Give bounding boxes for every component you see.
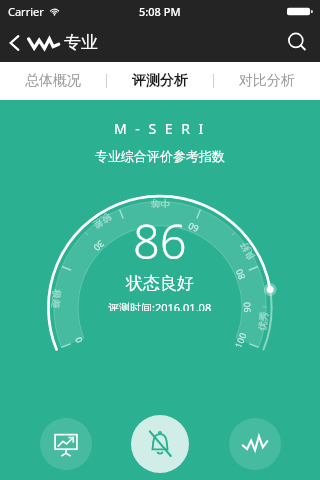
staticText: 5:08 PM bbox=[139, 4, 181, 19]
button[interactable]: Mute notifications bbox=[131, 415, 189, 473]
staticText: 专业 bbox=[64, 32, 98, 53]
staticText: 86 bbox=[133, 209, 187, 273]
button[interactable]: Back bbox=[0, 26, 108, 59]
staticText: 评测时间:2016.01.08 bbox=[108, 300, 212, 311]
staticText: 专业综合评价参考指数 bbox=[95, 148, 225, 164]
button[interactable]: 对比分析 bbox=[214, 62, 320, 100]
staticText: 对比分析 bbox=[239, 72, 295, 90]
staticText: 状态良好 bbox=[126, 273, 194, 294]
staticText: M - S E R I bbox=[114, 119, 206, 138]
button[interactable]: 总体概况 bbox=[0, 62, 106, 100]
button[interactable]: Reports bbox=[40, 418, 92, 470]
button[interactable]: Search bbox=[275, 24, 320, 61]
staticText: 总体概况 bbox=[25, 72, 81, 90]
staticText: Carrier bbox=[8, 4, 44, 19]
button[interactable]: 评测分析 bbox=[107, 62, 213, 100]
button[interactable]: Activity bbox=[229, 418, 281, 470]
staticText: 评测分析 bbox=[132, 72, 188, 90]
